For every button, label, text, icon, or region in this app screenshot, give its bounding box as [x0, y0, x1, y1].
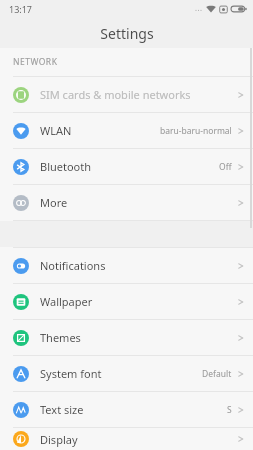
button[interactable]: Display — [0, 428, 253, 450]
button[interactable]: Wallpaper — [0, 284, 253, 319]
button[interactable]: SIM cards & mobile networks — [0, 77, 253, 112]
staticText: baru-baru-normal — [160, 125, 232, 137]
button[interactable]: System font — [0, 356, 253, 391]
staticText: Display — [40, 432, 78, 447]
staticText: Notifications — [40, 258, 106, 273]
staticText: NETWORK — [13, 56, 58, 68]
staticText: System font — [40, 366, 102, 381]
staticText: Settings — [100, 24, 154, 43]
staticText: SIM cards & mobile networks — [40, 87, 191, 102]
staticText: S — [227, 404, 232, 416]
staticText: Bluetooth — [40, 159, 92, 174]
staticText: Off — [219, 161, 232, 173]
staticText: Text size — [40, 402, 84, 417]
staticText: WLAN — [40, 123, 72, 138]
button[interactable]: Themes — [0, 320, 253, 355]
button[interactable]: WLAN — [0, 113, 253, 148]
staticText: Default — [202, 368, 232, 380]
button[interactable]: Notifications — [0, 248, 253, 283]
staticText: More — [40, 195, 68, 210]
staticText: Wallpaper — [40, 294, 93, 309]
button[interactable]: Bluetooth — [0, 149, 253, 184]
staticText: 13:17 — [9, 3, 33, 15]
button[interactable]: Text size — [0, 392, 253, 427]
staticText: Themes — [40, 330, 81, 345]
button[interactable]: More — [0, 185, 253, 220]
